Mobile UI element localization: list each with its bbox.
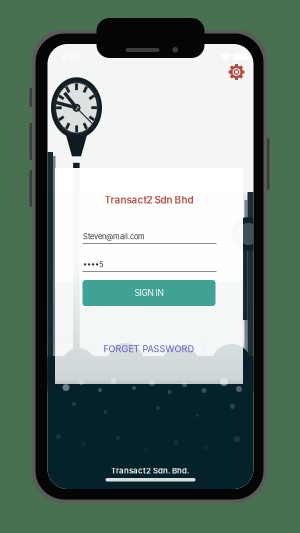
button[interactable]: SIGN IN <box>82 280 215 306</box>
button[interactable]: FORGET PASSWORD <box>55 340 243 358</box>
staticText: FORGET PASSWORD <box>103 343 194 354</box>
staticText: 8:24 <box>61 52 80 62</box>
staticText: Steven@mail.com <box>83 232 145 241</box>
staticText: SIGN IN <box>134 288 163 298</box>
staticText: Transact2 Sdn Bhd <box>104 194 193 206</box>
staticText: ••••5 <box>83 260 104 269</box>
staticText: Transact2 Sdn. Bhd. <box>111 466 190 475</box>
button[interactable]: Settings <box>224 60 248 84</box>
